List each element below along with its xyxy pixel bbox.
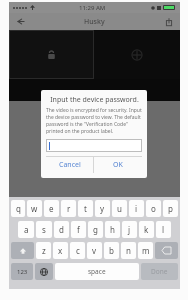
- staticText: m: [142, 245, 150, 256]
- button[interactable]: OK: [94, 157, 142, 173]
- button[interactable]: a: [18, 221, 34, 238]
- button[interactable]: c: [70, 242, 85, 259]
- button[interactable]: f: [71, 221, 86, 238]
- button[interactable]: Switch keyboard: [35, 263, 53, 280]
- staticText: w: [31, 203, 38, 214]
- button[interactable]: p: [163, 200, 178, 217]
- staticText: OK: [113, 160, 123, 170]
- button[interactable]: s: [36, 221, 52, 238]
- staticText: h: [110, 224, 115, 235]
- staticText: Cancel: [59, 160, 81, 170]
- button[interactable]: t: [78, 200, 93, 217]
- button[interactable]: Back: [9, 13, 31, 30]
- button[interactable]: space: [55, 263, 139, 280]
- staticText: Input the device password.: [50, 95, 139, 105]
- staticText: z: [42, 245, 46, 256]
- button[interactable]: h: [105, 221, 120, 238]
- button[interactable]: [46, 139, 142, 152]
- button[interactable]: Cancel: [46, 157, 93, 173]
- button[interactable]: r: [61, 200, 76, 217]
- staticText: k: [144, 224, 149, 235]
- staticText: j: [128, 224, 131, 235]
- staticText: r: [67, 203, 71, 214]
- button[interactable]: n: [121, 242, 136, 259]
- staticText: l: [162, 224, 165, 235]
- button[interactable]: 123: [11, 263, 33, 280]
- staticText: x: [58, 245, 63, 256]
- staticText: Done: [151, 267, 168, 276]
- staticText: g: [93, 224, 98, 235]
- button[interactable]: j: [122, 221, 137, 238]
- button[interactable]: z: [36, 242, 51, 259]
- button[interactable]: w: [27, 200, 42, 217]
- staticText: y: [100, 203, 105, 214]
- button[interactable]: x: [53, 242, 68, 259]
- button[interactable]: e: [44, 200, 59, 217]
- staticText: o: [151, 203, 156, 214]
- button[interactable]: Done: [141, 263, 178, 280]
- button[interactable]: q: [11, 200, 25, 217]
- staticText: p: [168, 203, 173, 214]
- button[interactable]: k: [139, 221, 154, 238]
- button[interactable]: i: [129, 200, 144, 217]
- button[interactable]: b: [104, 242, 119, 259]
- button[interactable]: d: [54, 221, 69, 238]
- staticText: v: [92, 245, 97, 256]
- staticText: Husky: [84, 17, 105, 27]
- staticText: t: [84, 203, 87, 214]
- staticText: The video is encrypted for security. Inp…: [46, 107, 142, 135]
- staticText: q: [16, 203, 21, 214]
- button[interactable]: l: [156, 221, 171, 238]
- button[interactable]: o: [146, 200, 161, 217]
- button[interactable]: g: [88, 221, 103, 238]
- staticText: 11:29 AM: [79, 4, 106, 12]
- button[interactable]: u: [112, 200, 127, 217]
- button[interactable]: v: [87, 242, 102, 259]
- staticText: i: [135, 203, 138, 214]
- staticText: u: [117, 203, 122, 214]
- staticText: space: [88, 267, 106, 276]
- button[interactable]: Delete: [155, 242, 178, 259]
- staticText: a: [24, 224, 29, 235]
- button[interactable]: m: [138, 242, 153, 259]
- staticText: f: [77, 224, 80, 235]
- staticText: b: [109, 245, 114, 256]
- staticText: c: [76, 245, 80, 256]
- button[interactable]: y: [95, 200, 110, 217]
- staticText: d: [59, 224, 64, 235]
- button[interactable]: Shift: [11, 242, 34, 259]
- staticText: 123: [17, 268, 28, 276]
- button[interactable]: Share: [158, 13, 180, 30]
- staticText: e: [49, 203, 54, 214]
- staticText: n: [126, 245, 131, 256]
- button[interactable]: [9, 30, 94, 79]
- staticText: s: [42, 224, 46, 235]
